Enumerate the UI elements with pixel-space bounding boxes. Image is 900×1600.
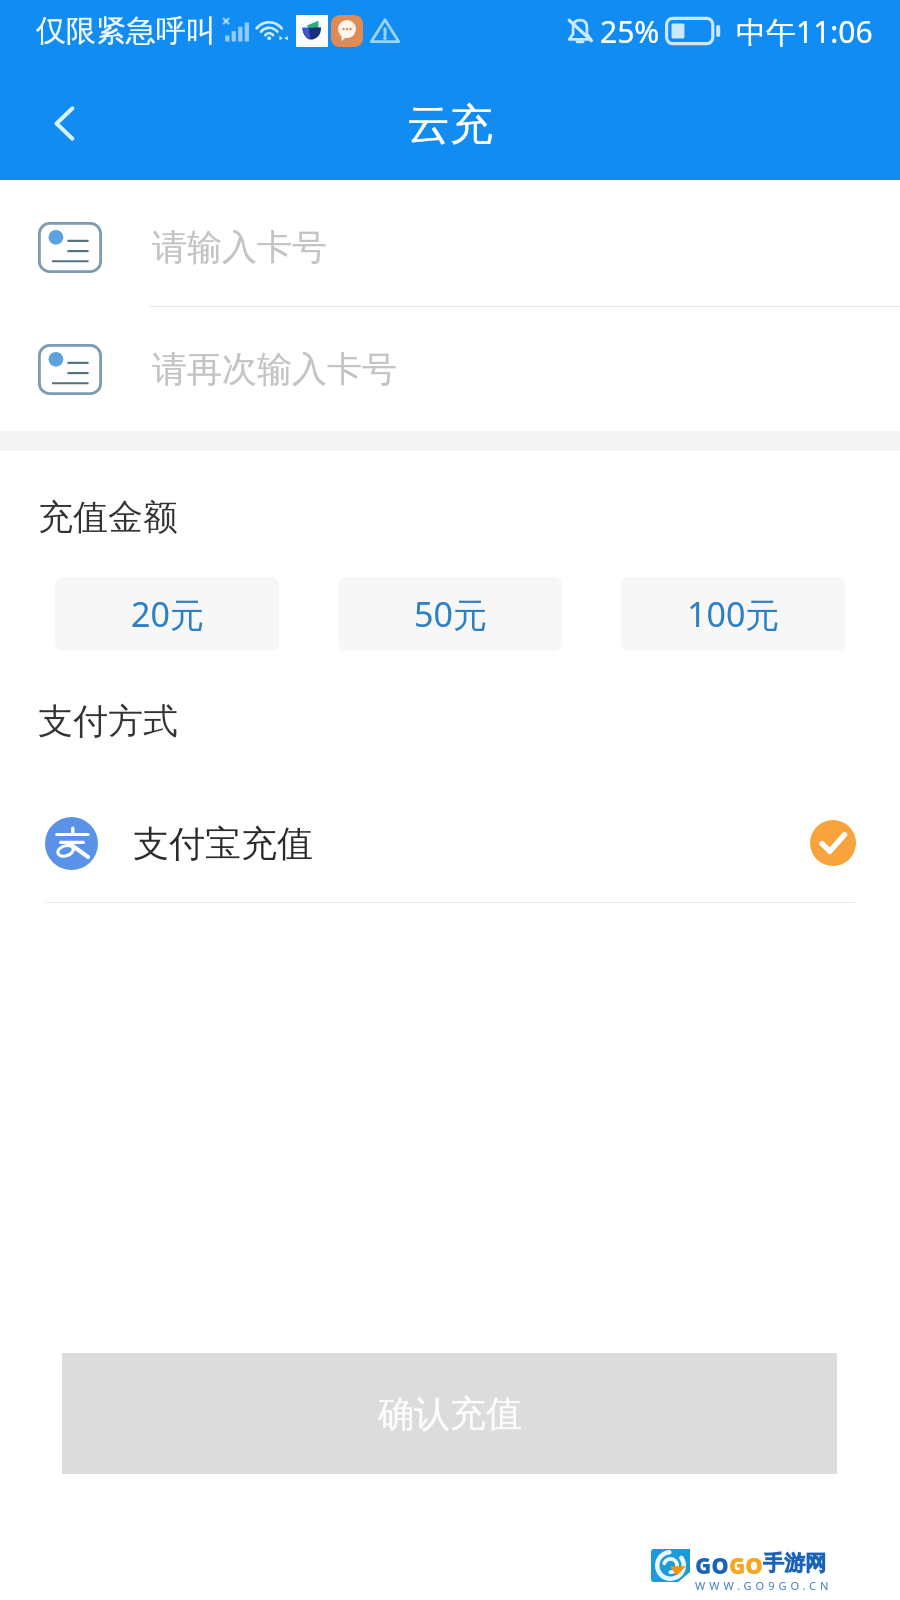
staticText: 25%: [600, 11, 660, 52]
button[interactable]: 100元: [621, 577, 845, 651]
staticText: 支付方式: [38, 699, 178, 743]
staticText: 支付宝充值: [133, 821, 313, 866]
staticText: 云充: [407, 98, 493, 152]
staticText: 100元: [687, 591, 780, 637]
staticText: 请再次输入卡号: [152, 347, 397, 391]
staticText: 手游网: [763, 1550, 826, 1576]
staticText: 仅限紧急呼叫: [36, 12, 216, 50]
staticText: 50元: [414, 591, 487, 637]
button[interactable]: 50元: [338, 577, 562, 651]
staticText: 20元: [131, 591, 204, 637]
button[interactable]: 请再次输入卡号: [0, 321, 900, 417]
staticText: WWW.GO9GO.CN: [695, 1578, 833, 1593]
button[interactable]: 请输入卡号: [0, 199, 900, 295]
button[interactable]: 20元: [55, 577, 279, 651]
staticText: GO: [695, 1550, 729, 1580]
staticText: 充值金额: [38, 495, 178, 539]
staticText: 确认充值: [378, 1391, 522, 1436]
button[interactable]: 支付宝充值: [0, 795, 900, 891]
button[interactable]: 确认充值: [62, 1353, 837, 1474]
staticText: 中午11:06: [736, 11, 873, 52]
staticText: 请输入卡号: [152, 225, 327, 269]
staticText: GO: [729, 1550, 763, 1580]
button[interactable]: Back: [5, 64, 123, 182]
